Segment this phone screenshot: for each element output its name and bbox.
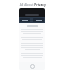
button[interactable] — [25, 14, 39, 16]
staticText: All About — [19, 3, 34, 7]
button[interactable]: Home — [30, 64, 35, 69]
staticText: Privacy — [34, 3, 46, 7]
button[interactable] — [33, 18, 44, 22]
button[interactable] — [20, 18, 30, 22]
